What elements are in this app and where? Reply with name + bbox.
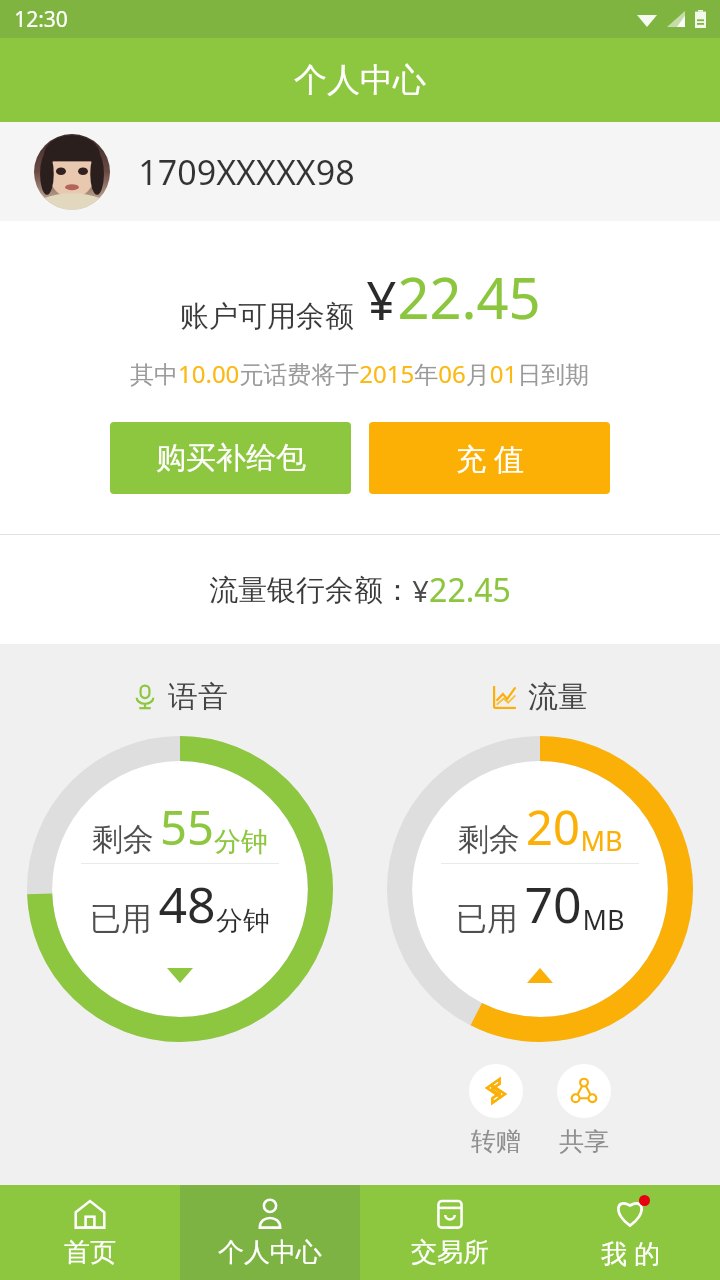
staticText: 剩余 [92,820,154,859]
staticText: 充 值 [456,438,524,479]
staticText: 分钟 [216,904,270,938]
staticText: MB [580,822,623,859]
other: 共享 [569,1076,599,1106]
staticText: 转赠 [471,1126,521,1157]
staticText: 55 [160,795,214,859]
staticText: 流量 [528,678,588,716]
staticText: 共享 [559,1126,609,1157]
staticText: 70 [524,870,582,938]
staticText: 其中10.00元话费将于2015年06月01日到期 [130,357,590,390]
button[interactable]: 转赠 [469,1064,523,1157]
button[interactable]: 剩余 [27,736,333,1042]
staticText: 首页 [64,1236,116,1269]
staticText: 个人中心 [218,1236,322,1269]
staticText: 已用 [456,899,518,938]
button[interactable]: 购买补给包 [110,422,351,494]
staticText: 分钟 [214,825,268,859]
staticText: 48 [158,870,216,938]
staticText: 22.45 [397,259,541,335]
staticText: 12:30 [14,5,68,34]
staticText: 交易所 [411,1236,489,1269]
button[interactable]: 交易所 [360,1185,540,1280]
staticText: MB [582,901,625,938]
other: 转赠 [481,1076,511,1106]
staticText: 流量银行余额： [209,572,412,609]
staticText: ¥ [366,263,397,335]
staticText: 个人中心 [294,59,426,101]
button[interactable]: 剩余 [387,736,693,1042]
staticText: 已用 [90,899,152,938]
staticText: ¥ [412,571,429,610]
button[interactable]: 充 值 [369,422,610,494]
staticText: 22.45 [429,568,511,612]
staticText: 1709XXXXX98 [138,149,355,195]
button[interactable]: 首页 [0,1185,180,1280]
staticText: 剩余 [458,820,520,859]
staticText: 账户可用余额 [180,298,354,335]
button[interactable]: 个人中心 [180,1185,360,1280]
button[interactable]: 共享 [557,1064,611,1157]
staticText: 语音 [168,678,228,716]
staticText: 我 的 [601,1235,660,1271]
button[interactable]: 我 的 [540,1185,720,1280]
staticText: 20 [526,795,580,859]
staticText: 购买补给包 [156,439,306,477]
